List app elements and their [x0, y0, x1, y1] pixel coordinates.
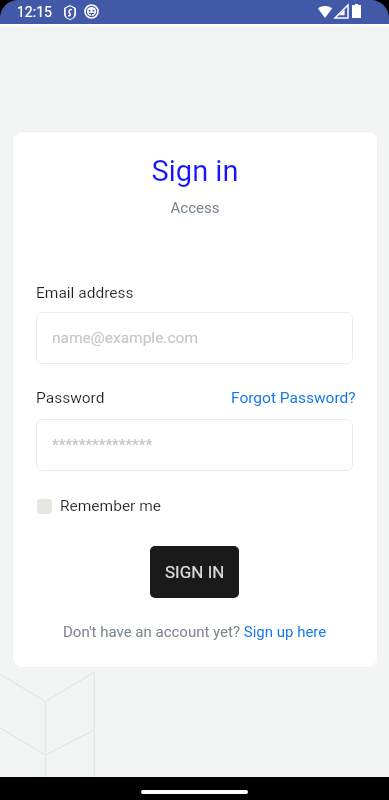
staticText: name@example.com	[52, 329, 198, 347]
staticText: Don't have an account yet? Sign up here	[63, 623, 327, 641]
button[interactable]: name@example.com	[36, 312, 353, 364]
other: VPN	[64, 5, 76, 20]
other: Account	[85, 5, 98, 18]
staticText: Sign in	[12, 154, 378, 188]
staticText: Password	[36, 389, 105, 407]
button[interactable]: Forgot Password?	[231, 389, 356, 407]
button[interactable]: Remember me	[37, 497, 162, 515]
staticText: ***************	[52, 436, 153, 454]
staticText: 12:15	[17, 4, 52, 20]
staticText: Email address	[36, 284, 134, 302]
button[interactable]: SIGN IN	[150, 546, 239, 598]
staticText: Access	[12, 199, 378, 217]
other: Home	[0, 777, 389, 800]
button[interactable]: Don't have an account yet? Sign up here	[63, 623, 327, 641]
staticText: Remember me	[60, 497, 162, 515]
staticText: SIGN IN	[165, 562, 225, 582]
staticText: Forgot Password?	[231, 389, 356, 407]
button[interactable]: ***************	[36, 419, 353, 471]
